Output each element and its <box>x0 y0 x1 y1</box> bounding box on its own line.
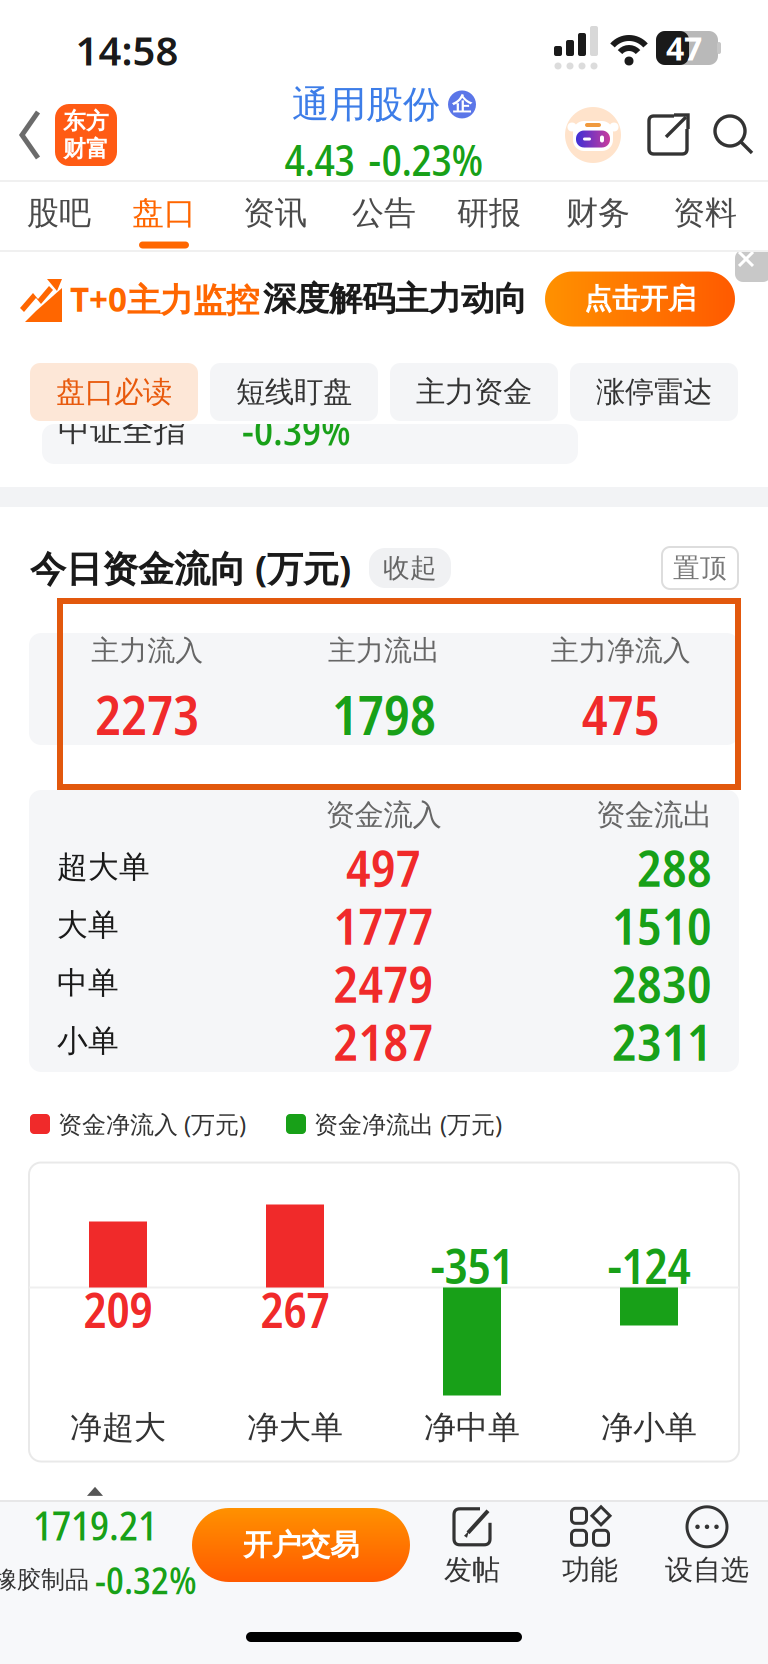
staticText: 14:58 <box>75 23 178 76</box>
staticText: 4.43 <box>284 130 354 188</box>
staticText: 橡胶制品 <box>0 1565 89 1594</box>
staticText: -0.23% <box>368 130 483 188</box>
staticText: 发帖 <box>444 1553 500 1587</box>
staticText: 资金净流入 (万元) <box>58 1108 246 1140</box>
staticText: 点击开启 <box>584 282 696 316</box>
button[interactable]: 短线盯盘 <box>210 363 378 421</box>
button[interactable]: 主力资金 <box>390 363 558 421</box>
staticText: 研报 <box>457 193 521 233</box>
staticText: -351 <box>430 1233 513 1298</box>
staticText: 2187 <box>333 1006 433 1075</box>
button[interactable]: 开户交易 <box>192 1508 410 1582</box>
button[interactable]: 研报 <box>457 193 521 233</box>
staticText: 小单 <box>57 1022 119 1060</box>
staticText: 主力净流入 <box>551 633 691 668</box>
button[interactable]: 东方财富 <box>55 104 117 166</box>
staticText: 中单 <box>57 964 119 1002</box>
staticText: 股吧 <box>27 193 91 233</box>
staticText: 今日资金流向 (万元) <box>30 544 351 592</box>
staticText: 短线盯盘 <box>236 374 352 410</box>
staticText: 收起 <box>383 552 437 584</box>
staticText: 资金净流出 (万元) <box>314 1108 502 1140</box>
staticText: 功能 <box>562 1553 618 1587</box>
button[interactable]: AI 助手 <box>565 107 621 163</box>
staticText: 财务 <box>566 193 630 233</box>
staticText: -124 <box>607 1233 690 1298</box>
button[interactable]: 点击开启 <box>545 271 735 326</box>
button[interactable]: 资讯 <box>243 193 307 233</box>
button[interactable]: 盘口必读 <box>30 363 198 421</box>
staticText: 超大单 <box>57 848 150 886</box>
staticText: 资讯 <box>243 193 307 233</box>
button[interactable]: 财务 <box>566 193 630 233</box>
button[interactable]: 发帖 <box>444 1505 500 1587</box>
staticText: 2830 <box>612 948 712 1017</box>
staticText: -0.32% <box>95 1554 197 1605</box>
button[interactable]: 置顶 <box>662 547 738 589</box>
staticText: 净大单 <box>247 1408 343 1447</box>
staticText: 1798 <box>332 678 436 750</box>
staticText: 资金流入 <box>325 797 441 833</box>
staticText: 大单 <box>57 906 119 944</box>
staticText: 主力流入 <box>91 633 203 668</box>
staticText: 267 <box>260 1277 329 1342</box>
staticText: 开户交易 <box>243 1527 359 1563</box>
staticText: 2273 <box>95 678 199 750</box>
button[interactable]: 设自选 <box>665 1505 749 1587</box>
staticText: 净中单 <box>424 1408 520 1447</box>
staticText: 2479 <box>333 948 433 1017</box>
staticText: 盘口 <box>132 193 196 233</box>
staticText: T+0主力监控 <box>70 277 259 321</box>
button[interactable]: Close <box>735 250 768 282</box>
button[interactable]: 1719.21 <box>0 1487 197 1605</box>
staticText: 288 <box>637 832 712 901</box>
button[interactable]: Share <box>646 113 690 157</box>
button[interactable]: 盘口 <box>132 193 196 233</box>
staticText: 主力流出 <box>328 633 440 668</box>
staticText: 1777 <box>333 890 433 959</box>
button[interactable]: 公告 <box>352 193 416 233</box>
staticText: 1510 <box>612 890 712 959</box>
staticText: 通用股份 <box>292 81 440 127</box>
staticText: 涨停雷达 <box>596 374 712 410</box>
button[interactable]: 收起 <box>369 548 451 588</box>
staticText: 资料 <box>673 193 737 233</box>
staticText: -0.39% <box>242 403 351 457</box>
button[interactable]: Search <box>712 113 756 157</box>
staticText: 47 <box>666 27 702 69</box>
staticText: 企 <box>452 92 472 117</box>
staticText: 209 <box>83 1277 152 1342</box>
staticText: 设自选 <box>665 1553 749 1587</box>
button[interactable]: 涨停雷达 <box>570 363 738 421</box>
staticText: 公告 <box>352 193 416 233</box>
staticText: 1719.21 <box>33 1498 157 1552</box>
button[interactable]: 功能 <box>562 1505 618 1587</box>
button[interactable]: 股吧 <box>27 193 91 233</box>
staticText: 资金流出 <box>596 797 712 833</box>
staticText: 深度解码主力动向 <box>263 278 527 319</box>
button[interactable]: 中证全指 <box>42 424 578 464</box>
staticText: 主力资金 <box>416 374 532 410</box>
staticText: 中证全指 <box>58 410 186 450</box>
button[interactable]: 资料 <box>673 193 737 233</box>
staticText: 475 <box>582 678 660 750</box>
staticText: 盘口必读 <box>56 374 172 410</box>
staticText: 置顶 <box>673 552 727 584</box>
staticText: 净超大 <box>70 1408 166 1447</box>
staticText: 东方 <box>63 107 109 135</box>
staticText: 财富 <box>63 135 109 163</box>
button[interactable]: Back <box>18 110 42 160</box>
staticText: 净小单 <box>601 1408 697 1447</box>
staticText: 497 <box>346 832 421 901</box>
staticText: 2311 <box>612 1006 712 1075</box>
